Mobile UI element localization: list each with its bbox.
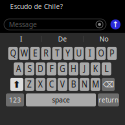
staticText: F <box>49 64 53 74</box>
staticText: O <box>98 48 104 59</box>
staticText: No <box>100 34 109 43</box>
staticText: W <box>20 48 27 59</box>
button[interactable]: B <box>69 78 78 91</box>
button[interactable]: Delete <box>102 78 115 91</box>
staticText: A <box>16 64 21 74</box>
staticText: R <box>43 48 48 59</box>
staticText: J <box>83 64 85 74</box>
button[interactable]: E <box>30 47 40 60</box>
staticText: Escudo de Chile? <box>10 2 63 11</box>
staticText: E <box>33 48 37 59</box>
staticText: Z <box>27 79 32 90</box>
button[interactable]: U <box>74 47 84 60</box>
button[interactable]: return <box>98 93 119 106</box>
button[interactable]: Y <box>63 47 73 60</box>
button[interactable]: space <box>26 93 96 106</box>
button[interactable]: C <box>47 78 56 91</box>
button[interactable]: P <box>107 47 117 60</box>
button[interactable]: Z <box>25 78 34 91</box>
button[interactable]: S <box>25 62 34 75</box>
staticText: Message <box>9 20 37 29</box>
button[interactable]: No <box>84 33 125 44</box>
staticText: C <box>49 79 54 90</box>
staticText: Y <box>65 48 70 59</box>
button[interactable]: 123 <box>6 93 24 106</box>
staticText: ⬆ <box>13 79 21 90</box>
staticText: X <box>38 79 43 90</box>
staticText: N <box>81 79 87 90</box>
staticText: P <box>109 48 114 59</box>
button[interactable]: F <box>47 62 56 75</box>
staticText: S <box>27 64 31 74</box>
staticText: G <box>59 64 65 74</box>
button[interactable]: H <box>69 62 78 75</box>
button[interactable]: A <box>14 62 23 75</box>
button[interactable]: R <box>41 47 51 60</box>
staticText: ⌫ <box>103 80 114 89</box>
button[interactable]: De <box>42 33 83 44</box>
staticText: K <box>93 64 98 74</box>
button[interactable]: D <box>36 62 45 75</box>
button[interactable]: O <box>96 47 106 60</box>
staticText: V <box>60 79 65 90</box>
staticText: H <box>70 64 76 74</box>
staticText: ↑ <box>112 20 119 29</box>
staticText: Q <box>10 48 16 59</box>
button[interactable]: Q <box>8 47 18 60</box>
button[interactable]: K <box>91 62 100 75</box>
button[interactable]: N <box>80 78 89 91</box>
staticText: D <box>37 64 43 74</box>
button[interactable]: T <box>52 47 62 60</box>
button[interactable]: V <box>58 78 67 91</box>
button[interactable]: Shift <box>10 78 23 91</box>
staticText: M <box>92 79 99 90</box>
staticText: T <box>55 48 59 59</box>
button[interactable]: X <box>36 78 45 91</box>
button[interactable]: L <box>102 62 111 75</box>
staticText: return <box>98 95 118 104</box>
button[interactable]: I <box>85 47 95 60</box>
button[interactable]: J <box>80 62 89 75</box>
staticText: De <box>58 34 67 43</box>
button[interactable]: I <box>0 33 41 44</box>
staticText: B <box>71 79 76 90</box>
staticText: I <box>20 34 22 43</box>
button[interactable]: G <box>58 62 67 75</box>
staticText: L <box>104 64 108 74</box>
button[interactable]: W <box>19 47 29 60</box>
button[interactable]: Send <box>110 19 121 30</box>
staticText: 123 <box>9 95 21 104</box>
staticText: space <box>52 95 70 104</box>
staticText: U <box>76 48 82 59</box>
staticText: I <box>88 48 91 59</box>
button[interactable]: M <box>91 78 100 91</box>
